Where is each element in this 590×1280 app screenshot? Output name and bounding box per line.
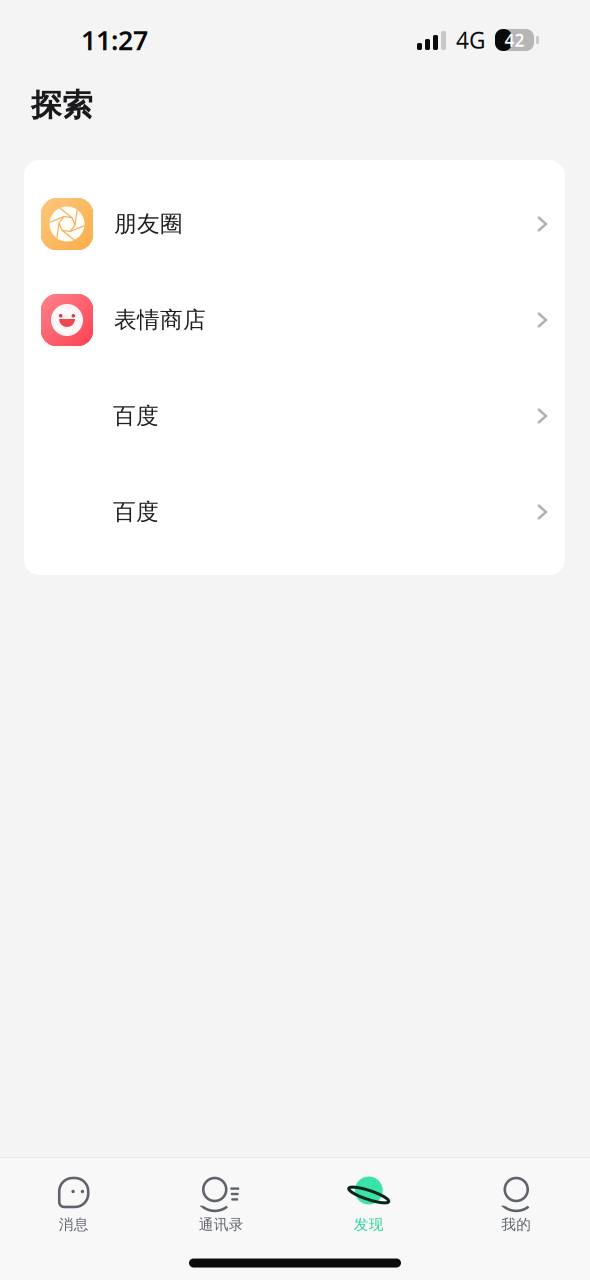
button[interactable]: 通讯录 bbox=[147, 1177, 295, 1233]
staticText: 朋友圈 bbox=[114, 210, 183, 238]
staticText: 42 bbox=[504, 28, 524, 51]
button[interactable]: 消息 bbox=[0, 1177, 147, 1233]
staticText: 11:27 bbox=[81, 22, 148, 58]
button[interactable]: 我的 bbox=[442, 1177, 590, 1233]
staticText: 探索 bbox=[31, 86, 93, 124]
staticText: 发现 bbox=[354, 1215, 384, 1233]
button[interactable]: 朋友圈 bbox=[24, 176, 565, 272]
staticText: 4G bbox=[456, 25, 486, 55]
staticText: 消息 bbox=[59, 1215, 89, 1233]
button[interactable]: 表情商店 bbox=[24, 272, 565, 368]
button[interactable]: 发现 bbox=[295, 1177, 442, 1233]
button[interactable]: 百度 bbox=[24, 368, 565, 464]
staticText: 百度 bbox=[113, 498, 159, 526]
staticText: 我的 bbox=[501, 1215, 531, 1233]
staticText: 通讯录 bbox=[199, 1215, 244, 1233]
staticText: 表情商店 bbox=[114, 306, 206, 334]
button[interactable]: 百度 bbox=[24, 464, 565, 560]
staticText: 百度 bbox=[113, 402, 159, 430]
